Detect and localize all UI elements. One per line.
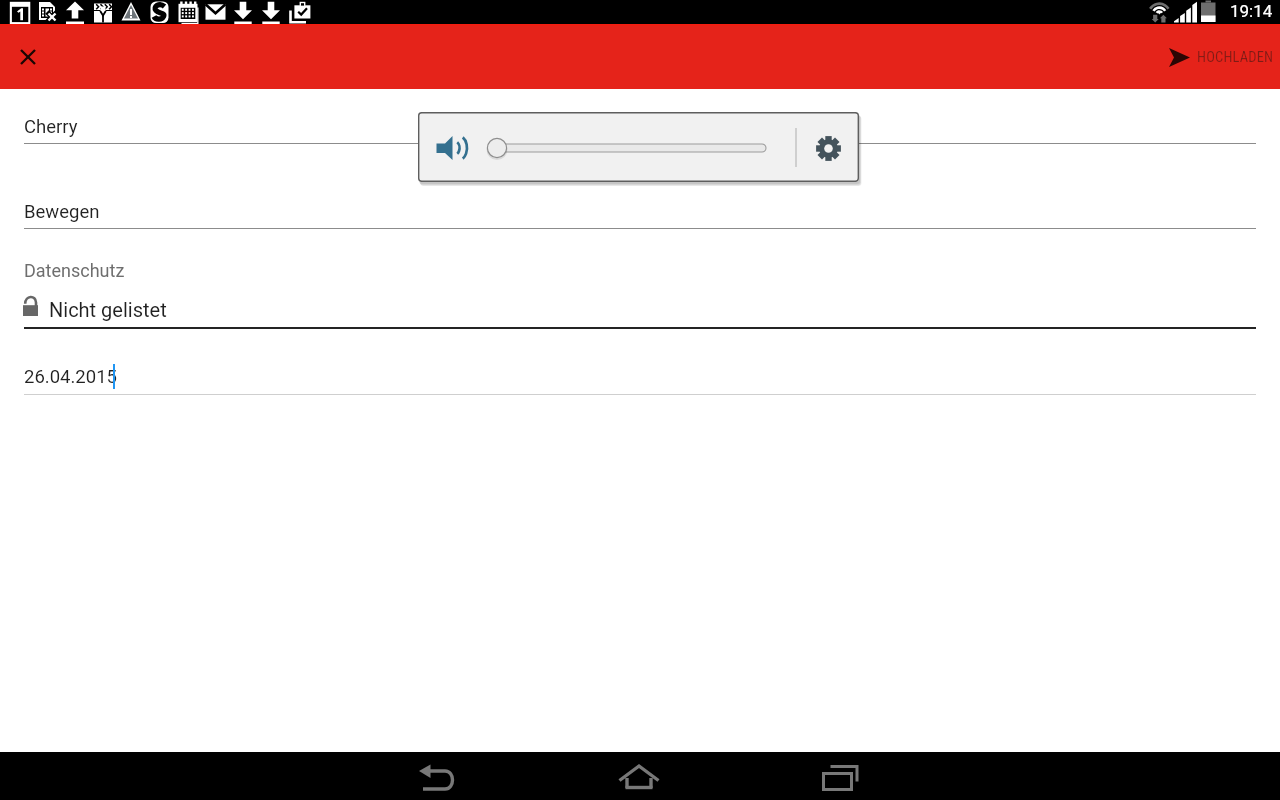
staticText: HOCHLADEN — [1197, 49, 1274, 66]
staticText: 19:14 — [1230, 1, 1273, 21]
button[interactable]: HOCHLADEN — [1169, 29, 1274, 85]
button[interactable]: Schließen — [4, 33, 52, 81]
button[interactable]: Startseite — [615, 752, 663, 800]
staticText: Datenschutz — [24, 260, 125, 281]
staticText: Nicht gelistet — [49, 298, 167, 321]
staticText: Bewegen — [24, 201, 100, 223]
button[interactable]: Zurück — [415, 752, 463, 800]
staticText: 26.04.2015 — [24, 366, 117, 388]
button[interactable]: Übersicht — [814, 752, 862, 800]
staticText: Cherry — [24, 116, 78, 138]
button[interactable]: Nicht gelistet — [0, 290, 1280, 324]
